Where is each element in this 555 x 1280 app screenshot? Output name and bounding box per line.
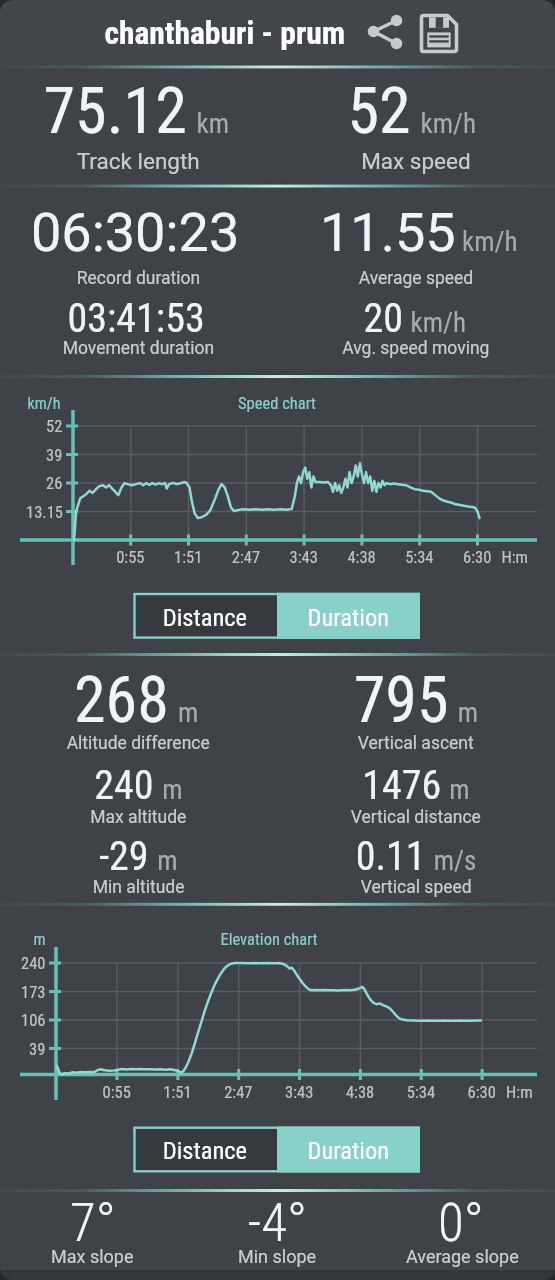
button[interactable] — [133, 1126, 277, 1172]
button[interactable] — [277, 1126, 420, 1172]
button[interactable] — [412, 7, 464, 57]
button[interactable] — [277, 592, 420, 638]
button[interactable] — [358, 7, 408, 57]
button[interactable] — [133, 592, 277, 638]
